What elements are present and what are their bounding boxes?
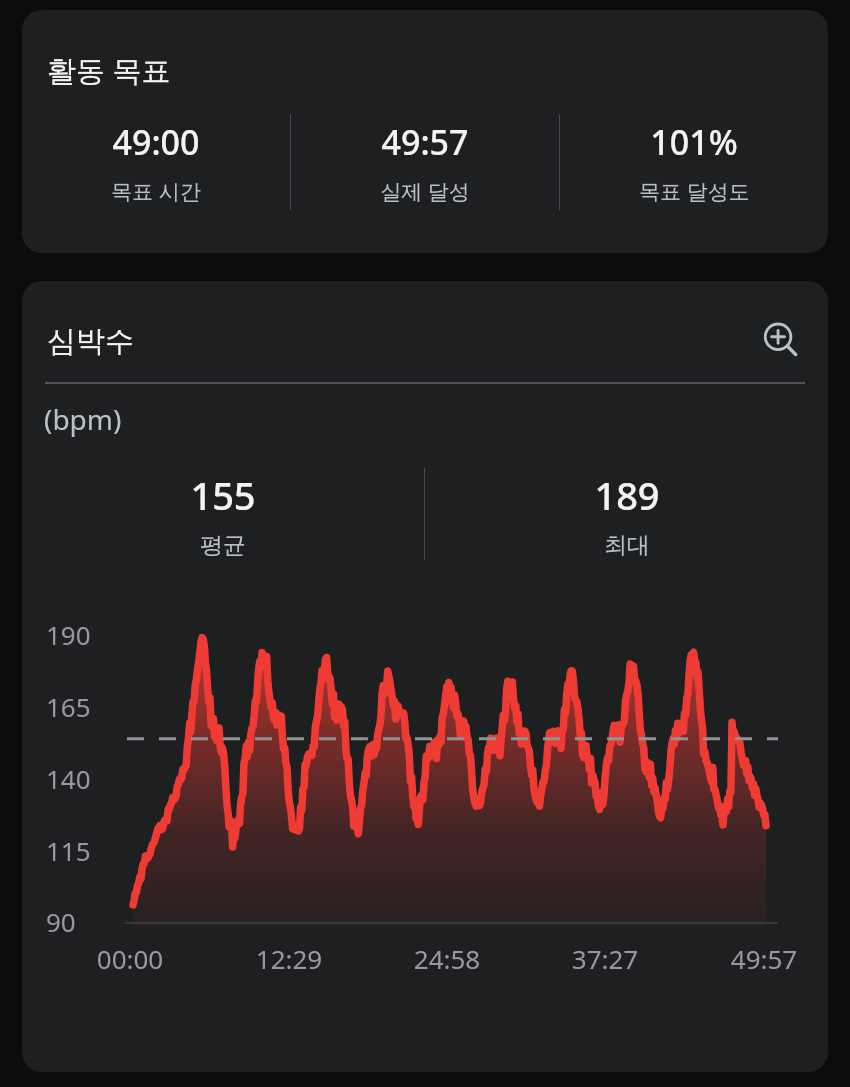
staticText: 49:00 [112,119,200,165]
staticText: 140 [46,761,91,796]
button[interactable]: 49:00 [22,119,290,206]
staticText: 12:29 [241,941,337,976]
staticText: 49:57 [381,119,469,165]
staticText: 최대 [604,531,650,560]
staticText: 115 [46,833,91,868]
staticText: (bpm) [44,400,122,438]
staticText: 심박수 [47,323,134,360]
staticText: 00:00 [82,941,178,976]
staticText: 실제 달성 [380,177,470,206]
button[interactable]: 101% [560,119,828,206]
button[interactable]: 49:57 [291,119,559,206]
button[interactable]: 155 [22,469,424,560]
staticText: 189 [594,469,660,521]
staticText: 190 [46,617,91,652]
staticText: 37:27 [557,941,653,976]
button[interactable]: 189 [425,469,828,560]
staticText: 평균 [200,531,246,560]
button[interactable]: Zoom in chart [752,312,810,370]
staticText: 90 [46,904,76,939]
staticText: 165 [46,689,91,724]
staticText: 목표 달성도 [639,177,750,206]
staticText: 목표 시간 [111,177,201,206]
staticText: 101% [650,119,738,165]
staticText: 155 [190,469,256,521]
staticText: 24:58 [399,941,495,976]
button[interactable]: 활동 목표 [22,10,828,253]
staticText: 49:57 [716,941,812,976]
staticText: 활동 목표 [47,50,171,90]
